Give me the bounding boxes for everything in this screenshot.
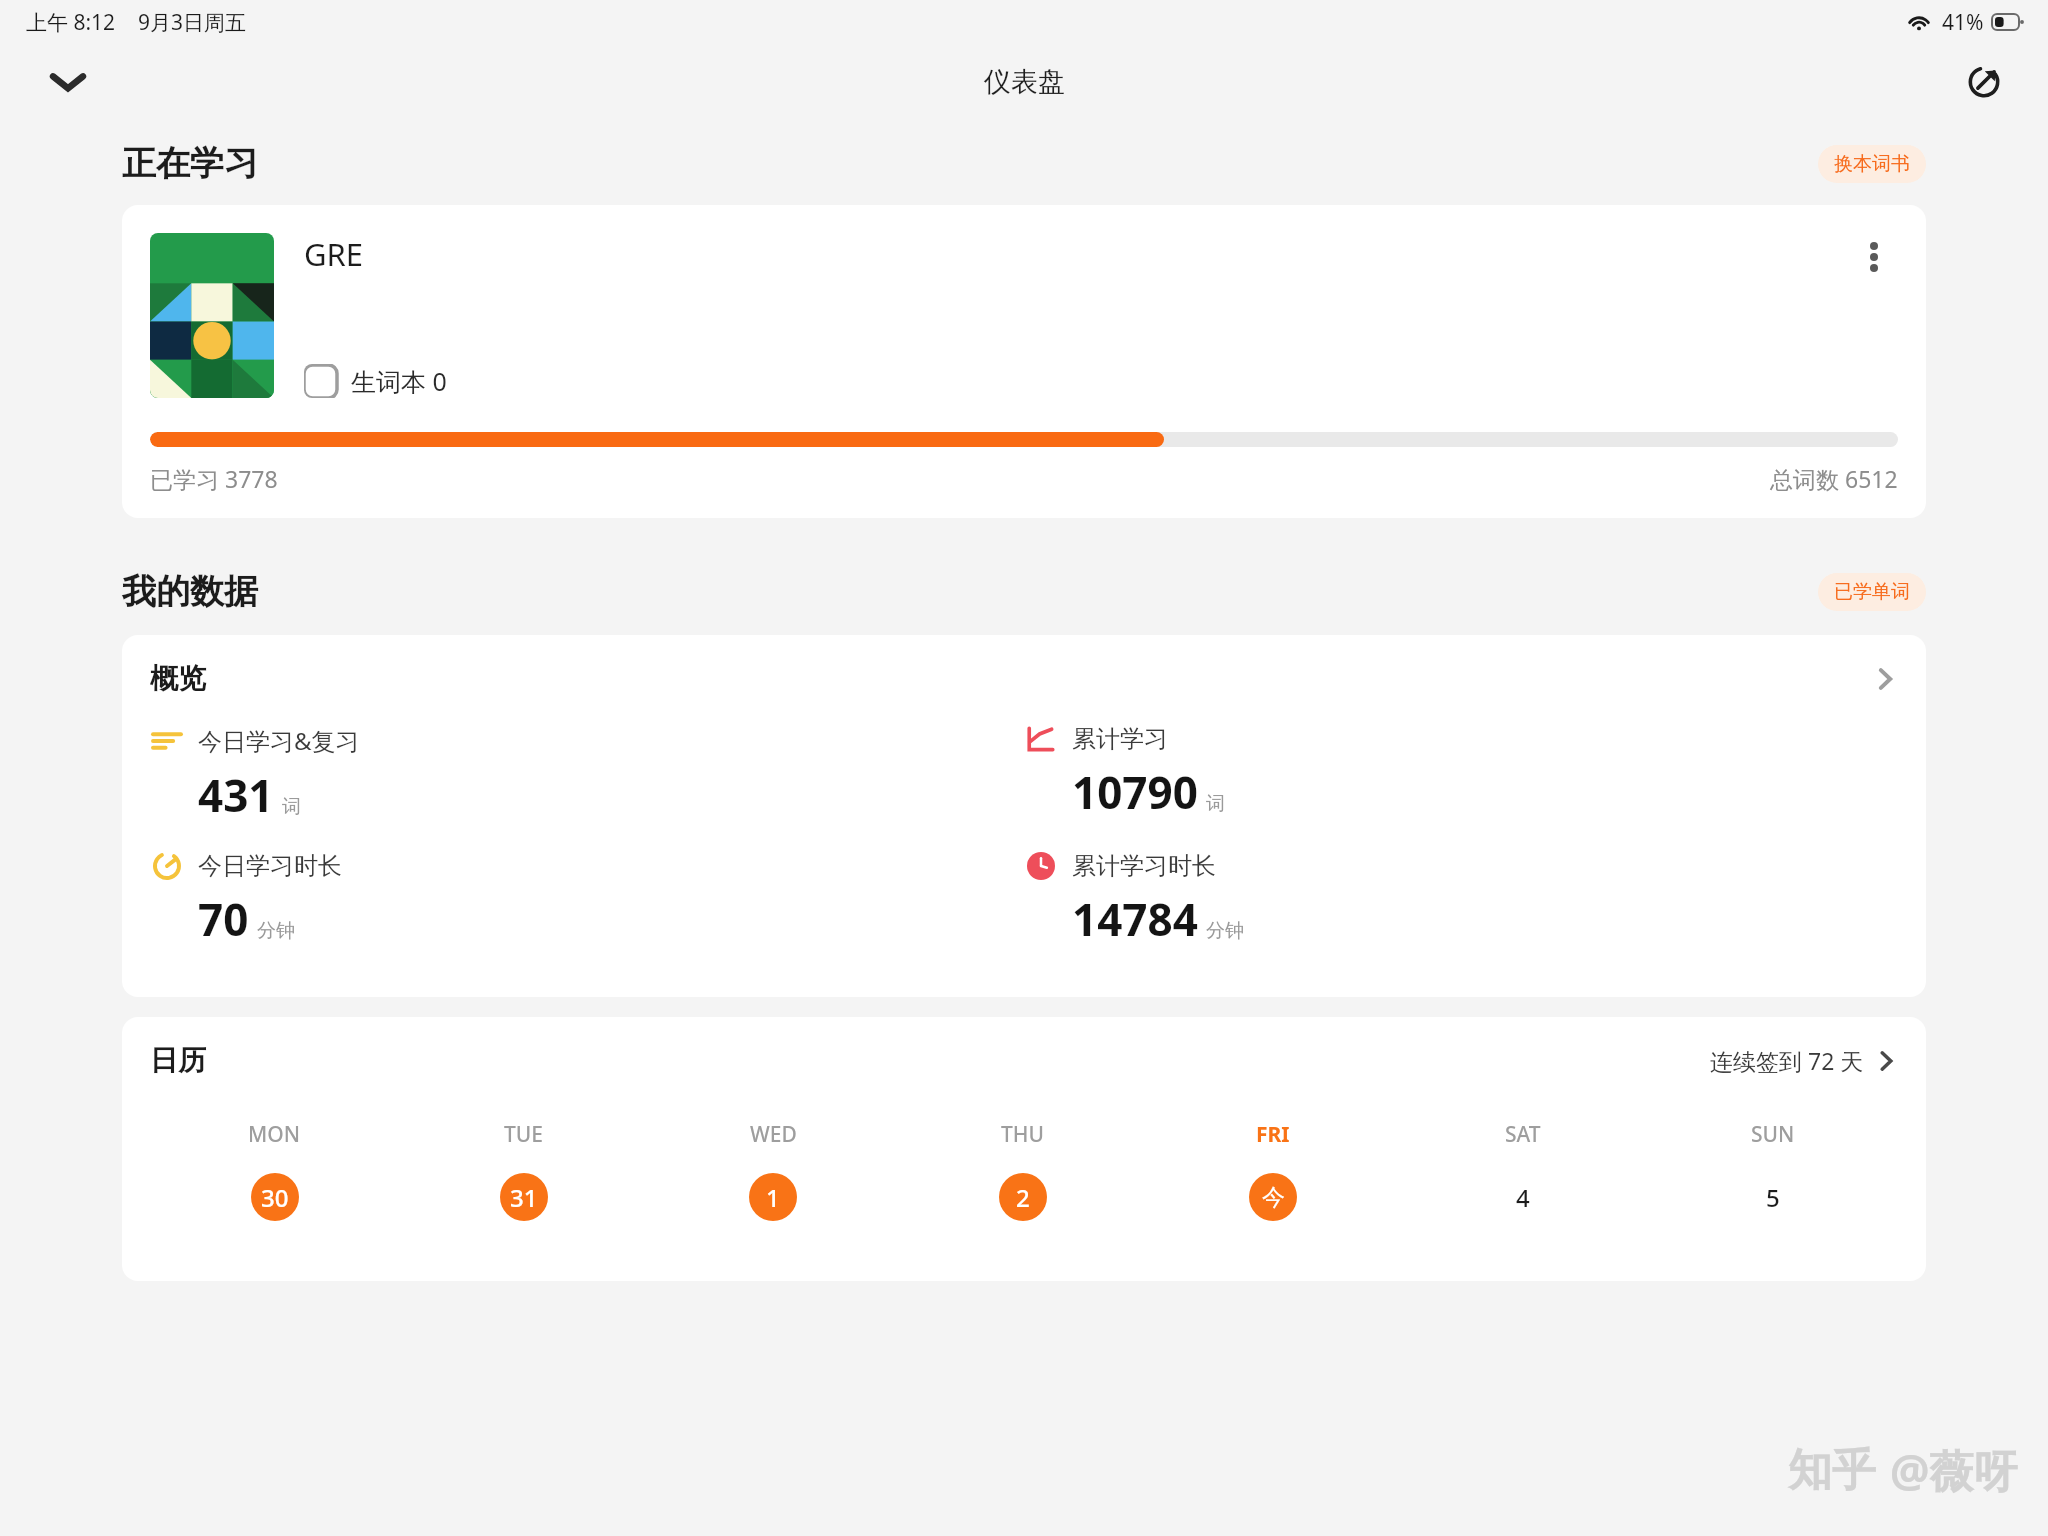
staticText: 70 [198, 889, 249, 949]
button[interactable]: 换本词书 [1818, 145, 1926, 183]
button[interactable]: Share [1956, 54, 2012, 110]
staticText: SUN [1751, 1120, 1795, 1149]
button[interactable]: 概览 [150, 661, 1898, 696]
button[interactable]: 日历 [150, 1043, 1898, 1078]
staticText: 知乎 [1788, 1443, 1876, 1498]
staticText: @薇呀 [1890, 1440, 2018, 1500]
staticText: 上午 8:12 [26, 8, 116, 37]
staticText: 概览 [150, 661, 206, 696]
staticText: 2 [1016, 1181, 1030, 1214]
button[interactable]: 今日学习时长 [150, 851, 1024, 949]
button[interactable]: 今日学习&复习 [150, 724, 1024, 825]
button[interactable]: More options [1850, 233, 1898, 281]
button[interactable]: TUE [399, 1120, 648, 1221]
button[interactable]: 累计学习 [1024, 724, 1898, 822]
staticText: 连续签到 72 天 [1710, 1045, 1864, 1076]
button[interactable]: Collapse [40, 54, 96, 110]
staticText: 日历 [150, 1043, 206, 1078]
staticText: 1 [766, 1181, 780, 1214]
staticText: FRI [1256, 1120, 1290, 1149]
button[interactable]: SUN [1648, 1120, 1898, 1221]
staticText: TUE [504, 1120, 543, 1149]
button[interactable]: 累计学习时长 [1024, 851, 1898, 949]
staticText: 10790 [1072, 762, 1198, 822]
staticText: 总词数 6512 [1770, 463, 1898, 494]
button[interactable]: WED [648, 1120, 898, 1221]
staticText: 41% [1942, 8, 1984, 37]
staticText: 431 [198, 765, 274, 825]
button[interactable]: SAT [1398, 1120, 1648, 1221]
staticText: 已学习 3778 [150, 463, 278, 494]
staticText: MON [248, 1120, 301, 1149]
staticText: 词 [282, 795, 301, 819]
staticText: 4 [1516, 1181, 1530, 1214]
staticText: 仪表盘 [984, 65, 1065, 99]
button[interactable]: GRE [122, 205, 1926, 518]
button[interactable]: MON [150, 1120, 399, 1221]
staticText: 今日学习&复习 [198, 724, 360, 757]
staticText: 14784 [1072, 889, 1198, 949]
staticText: 今日学习时长 [198, 851, 342, 881]
staticText: 正在学习 [122, 142, 258, 185]
staticText: 累计学习时长 [1072, 851, 1216, 881]
staticText: 词 [1206, 792, 1225, 816]
staticText: 30 [261, 1181, 289, 1214]
staticText: 31 [510, 1181, 538, 1214]
button[interactable]: THU [898, 1120, 1148, 1221]
staticText: 已学单词 [1834, 580, 1910, 604]
button[interactable]: 生词本 0 [304, 364, 447, 398]
staticText: 我的数据 [122, 570, 258, 613]
staticText: 累计学习 [1072, 724, 1168, 754]
staticText: THU [1001, 1120, 1045, 1149]
staticText: SAT [1505, 1120, 1541, 1149]
staticText: 分钟 [1206, 919, 1244, 943]
staticText: WED [750, 1120, 797, 1149]
button[interactable]: FRI [1148, 1120, 1398, 1221]
staticText: 生词本 0 [351, 364, 447, 398]
staticText: GRE [304, 233, 364, 275]
staticText: 5 [1766, 1181, 1780, 1214]
staticText: 换本词书 [1834, 152, 1910, 176]
staticText: 分钟 [257, 919, 295, 943]
staticText: 9月3日周五 [138, 8, 247, 37]
staticText: 今 [1262, 1183, 1285, 1212]
button[interactable]: 已学单词 [1818, 573, 1926, 611]
